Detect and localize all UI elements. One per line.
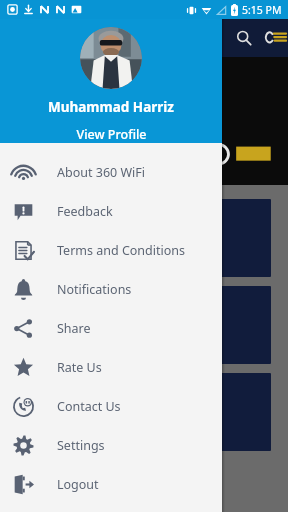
button[interactable]: View Profile — [70, 124, 153, 143]
staticText: Rate Us — [57, 359, 102, 376]
button[interactable]: Share — [0, 309, 222, 348]
staticText: Settings — [57, 437, 105, 454]
button[interactable]: Feedback — [0, 192, 222, 231]
button[interactable]: SMALL TRANSPORTATION — [8, 286, 271, 364]
button[interactable]: SPA & RELAX — [8, 373, 271, 451]
button[interactable]: Rate Us — [0, 348, 222, 387]
staticText: SPA & RELAX — [22, 424, 75, 436]
staticText: Muhammad Harriz — [48, 98, 174, 116]
staticText: Terms and Conditions — [57, 242, 186, 259]
button[interactable]: Notifications — [0, 270, 222, 309]
staticText: SMALL TRANSPORTATION — [22, 332, 99, 353]
button[interactable]: Muhammad Harriz — [48, 98, 174, 116]
staticText: Contact Us — [57, 398, 121, 415]
button[interactable]: Profile photo — [80, 27, 142, 89]
button[interactable]: EAT — [8, 199, 271, 277]
button[interactable]: Search — [232, 26, 256, 50]
staticText: Feedback — [57, 203, 113, 220]
staticText: Notifications — [57, 281, 132, 298]
button[interactable]: About 360 WiFi — [0, 153, 222, 192]
button[interactable]: Terms and Conditions — [0, 231, 222, 270]
staticText: 5:15 PM — [242, 3, 282, 17]
button[interactable]: Logout — [0, 465, 222, 504]
staticText: View Profile — [76, 126, 147, 141]
button[interactable]: Brand logo — [264, 25, 288, 51]
button[interactable]: Settings — [0, 426, 222, 465]
button[interactable]: Contact Us — [0, 387, 222, 426]
staticText: Logout — [57, 476, 99, 493]
staticText: Share — [57, 320, 91, 337]
staticText: EAT — [22, 250, 37, 262]
staticText: About 360 WiFi — [57, 164, 145, 181]
